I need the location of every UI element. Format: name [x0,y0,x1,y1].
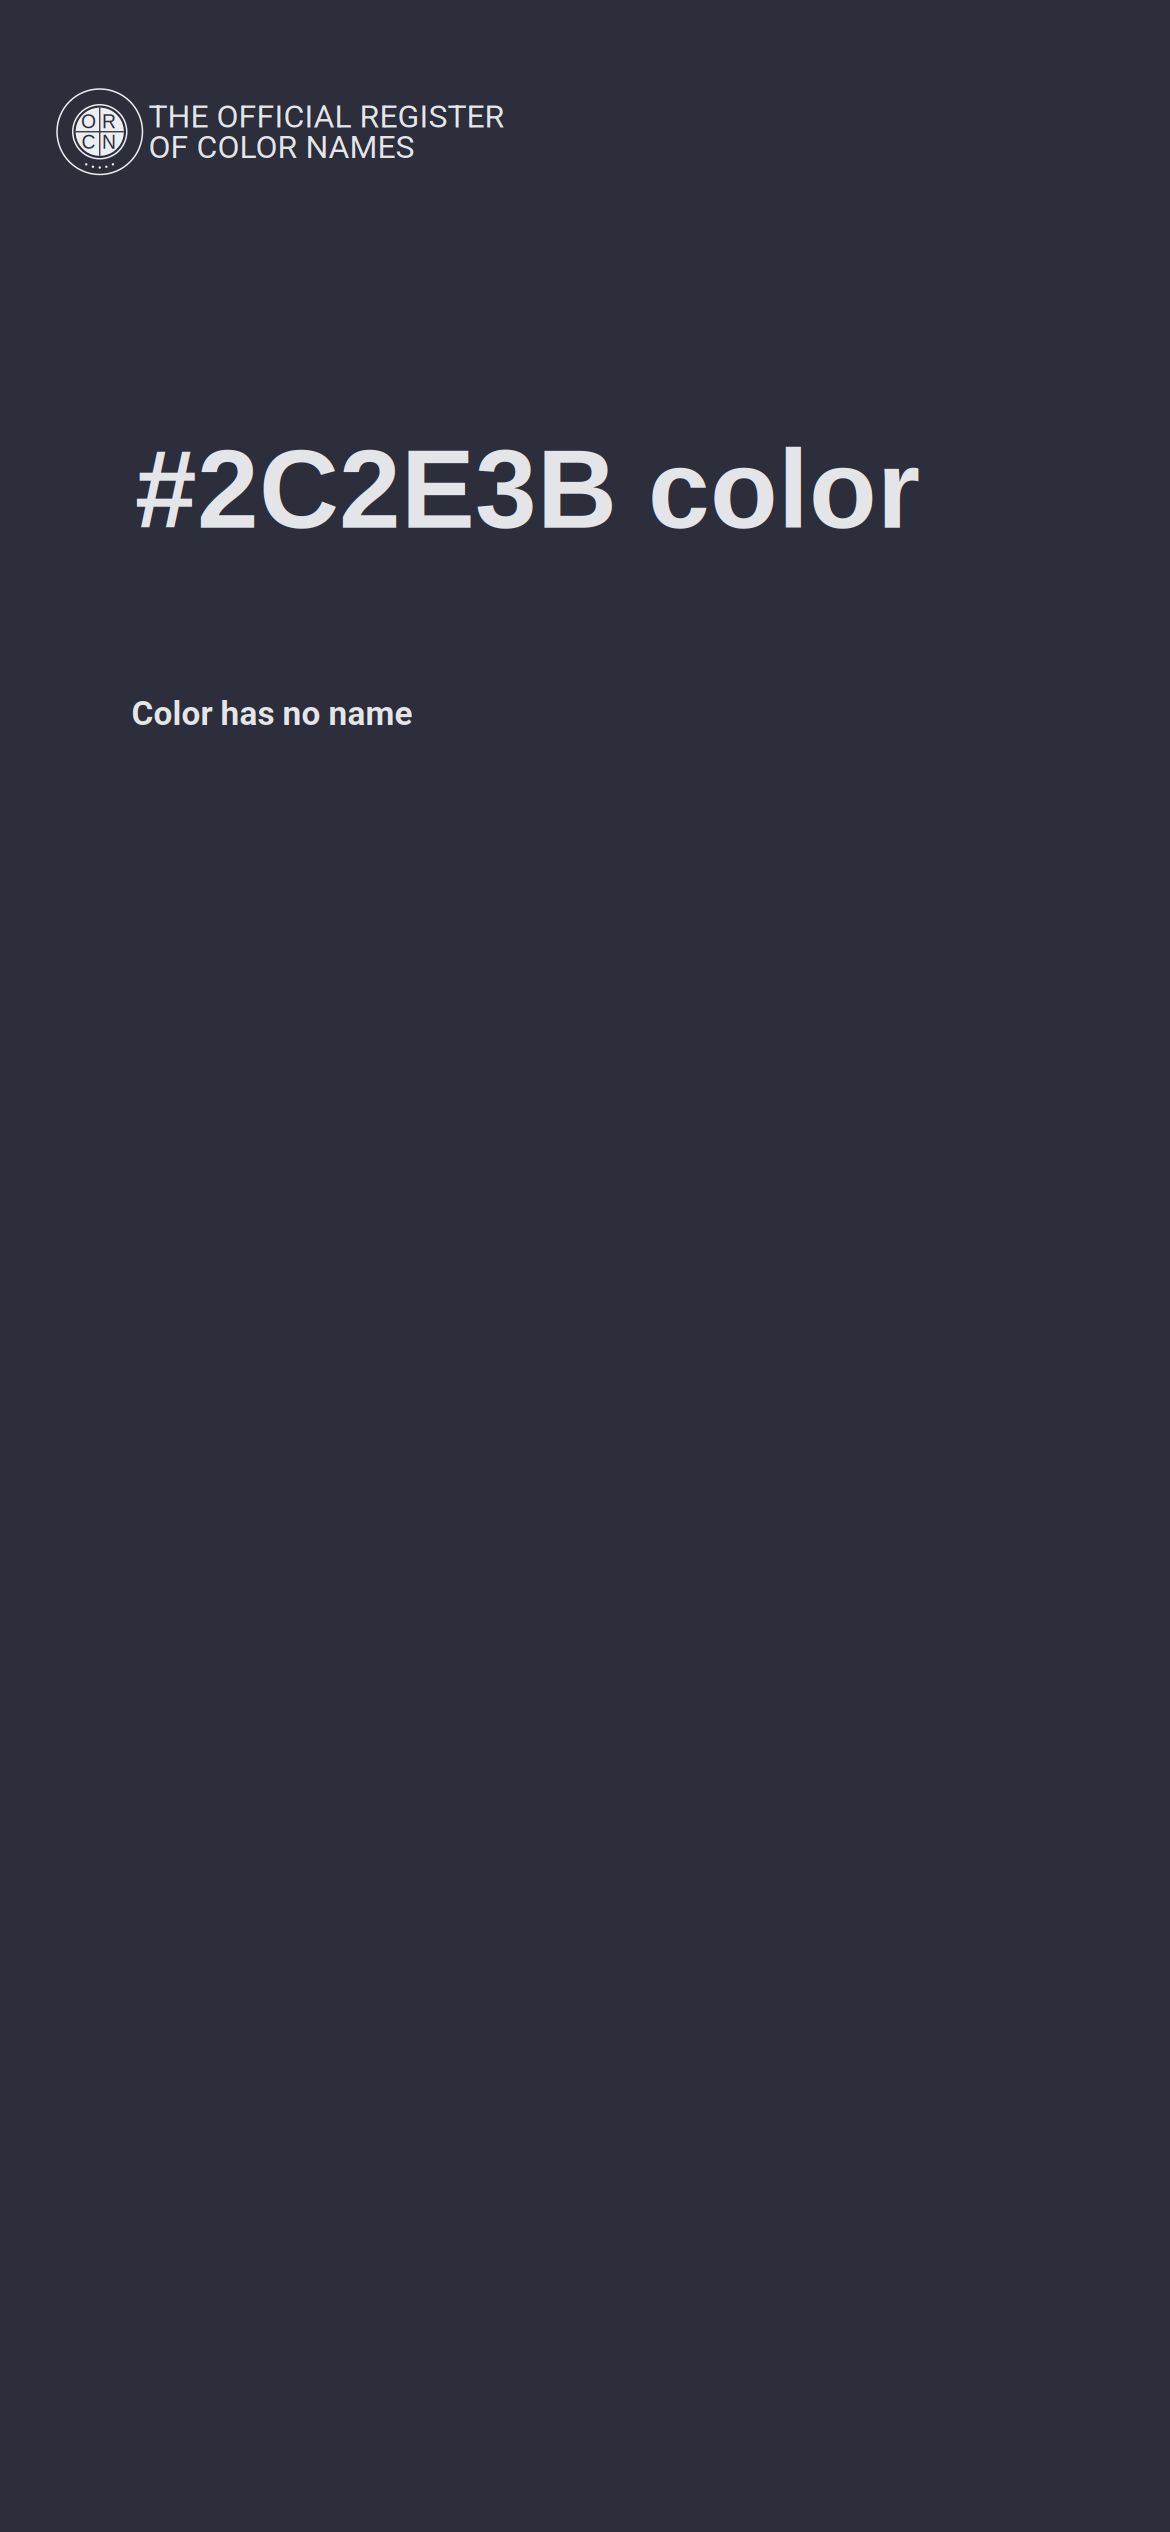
staticText: R [102,111,116,132]
staticText: OF COLOR NAMES [148,128,414,166]
staticText: Color has no name [131,694,412,733]
staticText: C [81,131,95,153]
staticText: #2C2E3B color [135,427,920,551]
button[interactable]: The Official Register of Color Names — h… [57,89,504,174]
staticText: THE OFFICIAL REGISTER [148,98,504,135]
staticText: O [81,111,96,132]
staticText: N [102,131,116,153]
